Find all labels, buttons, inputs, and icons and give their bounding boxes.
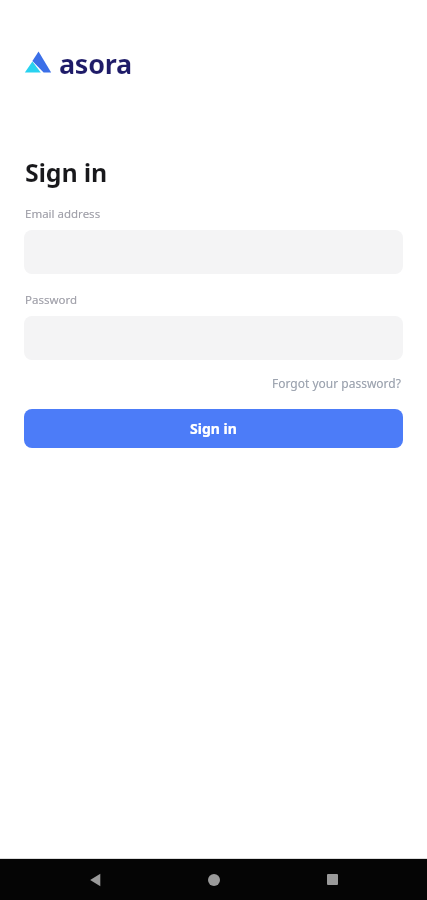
staticText: Email address	[25, 206, 101, 222]
button[interactable]: Home	[190, 859, 238, 900]
staticText: asora	[59, 45, 132, 79]
button[interactable]: Recent apps	[308, 859, 356, 900]
staticText: Forgot your password?	[272, 375, 401, 391]
button[interactable]: Back	[71, 859, 119, 900]
button[interactable]: Forgot your password?	[270, 372, 403, 394]
staticText: Password	[25, 292, 78, 308]
staticText: Sign in	[190, 419, 237, 438]
staticText: Sign in	[25, 155, 108, 189]
button[interactable]: Sign in	[24, 409, 403, 448]
